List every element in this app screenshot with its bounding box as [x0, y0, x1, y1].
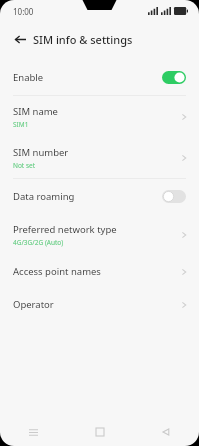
staticText: 10:00 — [13, 6, 34, 17]
button[interactable]: Back — [133, 418, 199, 446]
staticText: SIM name — [13, 105, 58, 118]
button[interactable]: On — [162, 71, 186, 84]
staticText: Operator — [13, 298, 54, 311]
staticText: SIM1 — [13, 120, 29, 129]
staticText: Data roaming — [13, 190, 162, 203]
button[interactable]: Data roaming — [0, 179, 199, 214]
button[interactable]: Recent apps — [0, 418, 67, 446]
staticText: SIM info & settings — [33, 32, 133, 47]
staticText: 4G/3G/2G (Auto) — [13, 238, 64, 247]
button[interactable]: Access point names — [0, 255, 199, 288]
staticText: Enable — [13, 71, 162, 84]
staticText: Access point names — [13, 265, 101, 278]
button[interactable]: SIM name — [0, 96, 199, 137]
button[interactable]: Back — [8, 27, 32, 51]
button[interactable]: Preferred network type — [0, 214, 199, 255]
button[interactable]: Off — [162, 190, 186, 203]
button[interactable]: Enable — [0, 60, 199, 95]
staticText: SIM number — [13, 146, 69, 159]
staticText: Preferred network type — [13, 223, 117, 236]
button[interactable]: Home — [67, 418, 133, 446]
staticText: Not set — [13, 161, 36, 170]
button[interactable]: Operator — [0, 288, 199, 321]
button[interactable]: SIM number — [0, 137, 199, 178]
